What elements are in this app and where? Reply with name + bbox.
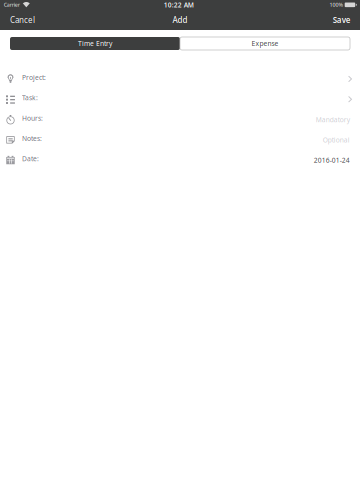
button[interactable]: Notes: [0,130,360,150]
staticText: Mandatory [316,115,350,124]
button[interactable]: Time Entry [10,37,180,50]
button[interactable]: Project: [0,69,360,89]
button[interactable]: Date: [0,150,360,170]
staticText: Project: [22,73,46,82]
staticText: Expense [251,39,278,48]
staticText: Add [172,14,187,25]
button[interactable]: Cancel [0,10,47,29]
staticText: Cancel [10,14,35,25]
staticText: 100% [329,1,343,8]
button[interactable]: Save [321,10,360,29]
staticText: Optional [323,135,350,144]
staticText: Task: [22,93,38,102]
button[interactable]: Hours: [0,109,360,130]
staticText: Notes: [22,134,42,143]
staticText: 10:22 AM [164,0,194,9]
staticText: Date: [22,154,39,163]
button[interactable]: Task: [0,89,360,109]
staticText: 2016-01-24 [314,156,350,165]
staticText: Hours: [22,114,43,122]
staticText: Time Entry [78,39,112,48]
staticText: Save [333,14,351,25]
staticText: Carrier [4,1,20,8]
button[interactable]: Expense [180,37,350,50]
